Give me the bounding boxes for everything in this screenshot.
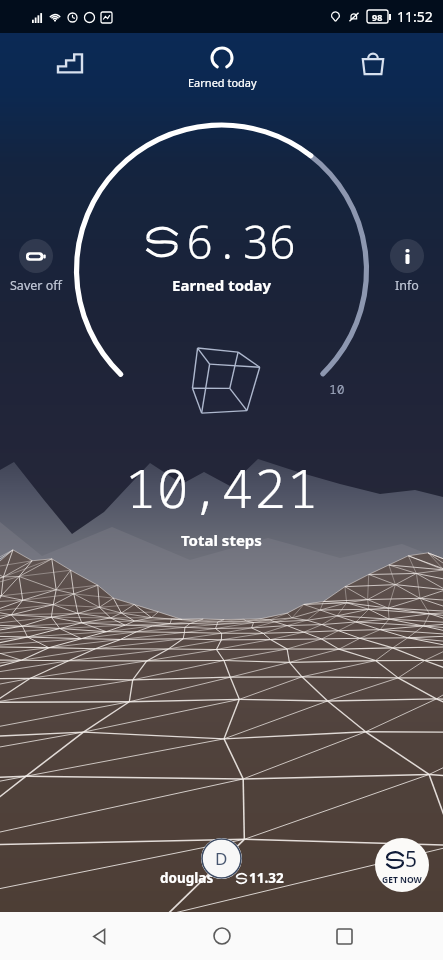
staticText: douglas [160, 869, 214, 887]
button[interactable]: Steps history [0, 33, 140, 101]
button[interactable]: Marketplace [303, 33, 443, 101]
button[interactable]: Profile [201, 838, 242, 879]
button[interactable]: douglas [160, 869, 284, 887]
staticText: GET NOW [382, 874, 422, 886]
button[interactable]: Info [390, 239, 424, 273]
staticText: Earned today [188, 75, 257, 90]
staticText: D [215, 847, 228, 870]
staticText: Saver off [10, 277, 62, 294]
button[interactable]: Back [75, 912, 123, 960]
button[interactable]: Earned today [142, 33, 302, 101]
staticText: Info [395, 277, 419, 294]
staticText: 11:52 [397, 7, 433, 26]
button[interactable]: 5 [375, 838, 429, 892]
staticText: 11.32 [249, 869, 284, 887]
staticText: Earned today [172, 275, 272, 295]
button[interactable]: Battery saver off [19, 239, 53, 273]
staticText: 10 [329, 380, 345, 398]
button[interactable]: Recent apps [320, 912, 368, 960]
staticText: 10,421 [124, 450, 319, 524]
staticText: 98 [372, 11, 383, 23]
button[interactable]: Home [198, 912, 246, 960]
staticText: 6.36 [186, 210, 297, 273]
staticText: 5 [405, 845, 418, 874]
staticText: Total steps [181, 530, 262, 550]
